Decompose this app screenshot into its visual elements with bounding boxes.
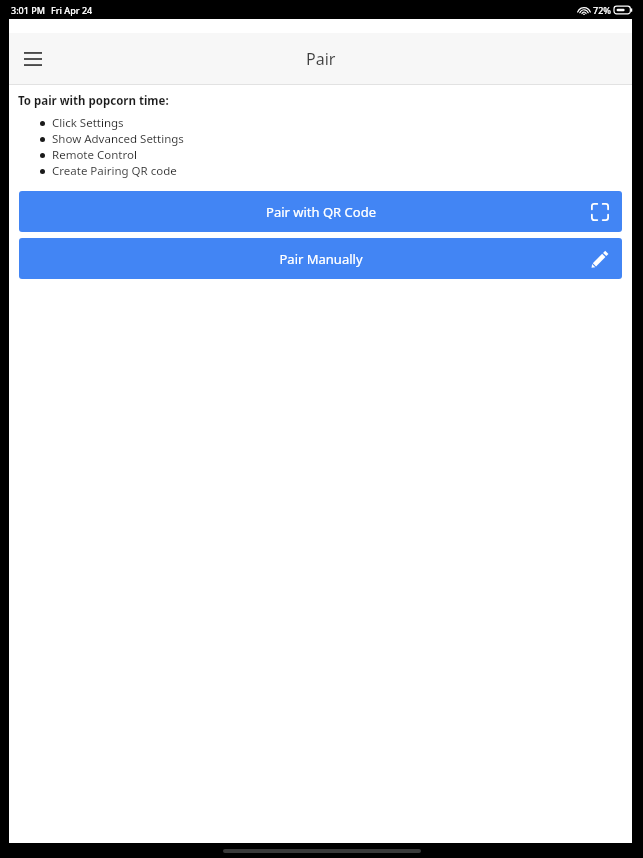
button[interactable]: Pair Manually [19, 238, 622, 279]
staticText: Pair [306, 48, 336, 70]
staticText: To pair with popcorn time: [18, 93, 169, 109]
staticText: Show Advanced Settings [52, 131, 184, 147]
staticText: Create Pairing QR code [52, 163, 177, 179]
other: Scan QR code [590, 202, 610, 222]
staticText: Fri Apr 24 [51, 4, 93, 16]
button[interactable]: Pair with QR Code [19, 191, 622, 232]
staticText: Pair with QR Code [266, 203, 376, 221]
staticText: Click Settings [52, 115, 124, 131]
button[interactable]: Open navigation menu [15, 41, 51, 77]
other: Edit [590, 249, 610, 269]
staticText: 3:01 PM [11, 4, 45, 16]
staticText: 72% [593, 4, 611, 16]
staticText: Pair Manually [279, 250, 363, 268]
staticText: Remote Control [52, 147, 137, 163]
